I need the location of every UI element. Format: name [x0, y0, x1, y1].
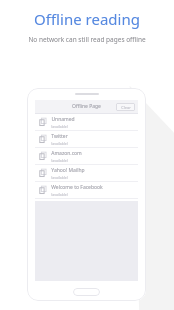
staticText: (available): [51, 175, 68, 180]
staticText: (available): [51, 192, 68, 197]
staticText: Clear: [121, 105, 131, 110]
button[interactable]: Clear: [116, 103, 135, 111]
button[interactable]: Amazon.com: [35, 148, 138, 164]
button[interactable]: Welcome to Facebook: [35, 182, 138, 198]
staticText: (available): [51, 141, 68, 146]
staticText: Welcome to Facebook: [51, 184, 103, 191]
button[interactable]: Unnamed: [35, 114, 138, 130]
staticText: Yahoo! Mailhp: [51, 167, 85, 174]
staticText: No network can still read pages offline: [28, 35, 146, 44]
button[interactable]: Yahoo! Mailhp: [35, 165, 138, 181]
staticText: (available): [51, 124, 68, 129]
staticText: Offline Page: [72, 103, 101, 110]
button[interactable]: Home: [73, 288, 100, 296]
button[interactable]: Twitter: [35, 131, 138, 147]
staticText: Amazon.com: [51, 150, 82, 157]
staticText: Twitter: [51, 133, 68, 140]
staticText: (available): [51, 158, 68, 163]
staticText: Offline reading: [34, 9, 140, 29]
staticText: Unnamed: [51, 116, 75, 123]
